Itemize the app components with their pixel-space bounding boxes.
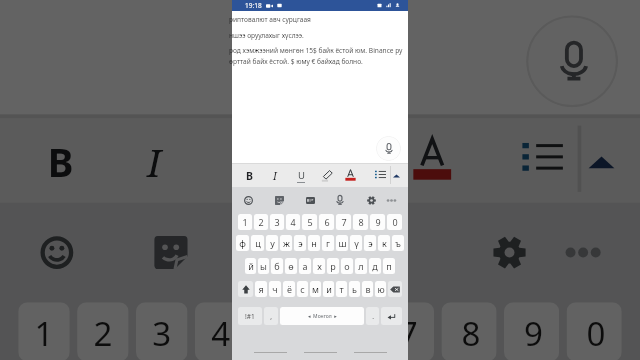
- staticText: B: [48, 137, 73, 188]
- button[interactable]: Stickers: [270, 189, 288, 211]
- button[interactable]: с: [297, 281, 308, 297]
- button[interactable]: 7: [336, 214, 351, 230]
- button[interactable]: г: [322, 235, 334, 251]
- button[interactable]: Emoji: [239, 189, 257, 211]
- button[interactable]: 1: [238, 214, 252, 230]
- button[interactable]: Text colour: [394, 118, 471, 203]
- button[interactable]: 5: [302, 214, 317, 230]
- button[interactable]: Navigation: [303, 348, 337, 356]
- button[interactable]: п: [383, 258, 395, 274]
- button[interactable]: GIF: [301, 189, 319, 211]
- button[interactable]: 9: [370, 214, 385, 230]
- button[interactable]: ё: [283, 281, 295, 297]
- button[interactable]: н: [308, 235, 320, 251]
- button[interactable]: Bulleted list: [370, 163, 391, 186]
- button[interactable]: Voice typing: [331, 189, 349, 211]
- button[interactable]: ч: [269, 281, 281, 297]
- button[interactable]: я: [255, 281, 267, 297]
- staticText: ф: [239, 237, 246, 249]
- button[interactable]: д: [369, 258, 381, 274]
- button[interactable]: 0: [387, 214, 402, 230]
- button[interactable]: Highlight: [316, 164, 337, 187]
- button[interactable]: ө: [285, 258, 297, 274]
- button[interactable]: GIF: [250, 210, 316, 291]
- button[interactable]: Stickers: [136, 210, 202, 291]
- button[interactable]: 3: [136, 302, 187, 360]
- button[interactable]: л: [355, 258, 367, 274]
- button[interactable]: !#1: [238, 307, 262, 325]
- button[interactable]: 8: [353, 214, 368, 230]
- button[interactable]: Shift: [238, 281, 253, 297]
- button[interactable]: 4: [286, 214, 300, 230]
- button[interactable]: 7: [379, 302, 434, 360]
- button[interactable]: Underline: [210, 118, 287, 203]
- button[interactable]: ж: [280, 235, 292, 251]
- button[interactable]: х: [313, 258, 325, 274]
- button[interactable]: и: [323, 281, 334, 297]
- button[interactable]: Navigation: [353, 348, 387, 356]
- button[interactable]: т: [336, 281, 347, 297]
- button[interactable]: э: [294, 235, 306, 251]
- button[interactable]: Bold: [22, 118, 99, 203]
- staticText: у: [270, 237, 275, 249]
- button[interactable]: 2: [254, 214, 268, 230]
- staticText: B: [246, 169, 253, 183]
- button[interactable]: .: [366, 307, 379, 325]
- button[interactable]: 6: [319, 214, 334, 230]
- button[interactable]: 6: [316, 302, 371, 360]
- button[interactable]: в: [362, 281, 373, 297]
- button[interactable]: 4: [195, 302, 246, 360]
- button[interactable]: Enter: [381, 307, 402, 325]
- button[interactable]: ъ: [392, 235, 404, 251]
- staticText: н: [311, 237, 317, 249]
- button[interactable]: у: [266, 235, 278, 251]
- button[interactable]: ф: [236, 235, 249, 251]
- button[interactable]: ◂ Монгол ▸: [280, 307, 364, 325]
- button[interactable]: э: [364, 235, 376, 251]
- button[interactable]: м: [310, 281, 321, 297]
- button[interactable]: 0: [567, 302, 622, 360]
- staticText: 5: [272, 310, 294, 354]
- button[interactable]: ь: [349, 281, 360, 297]
- button[interactable]: р: [327, 258, 339, 274]
- button[interactable]: Voice typing: [360, 210, 427, 291]
- button[interactable]: 1: [18, 302, 70, 360]
- button[interactable]: ы: [258, 258, 269, 274]
- button[interactable]: More options: [383, 189, 399, 211]
- button[interactable]: Voice input: [376, 136, 401, 161]
- button[interactable]: а: [299, 258, 311, 274]
- button[interactable]: Emoji: [22, 210, 88, 291]
- staticText: а: [302, 260, 308, 272]
- button[interactable]: Bulleted list: [504, 114, 581, 199]
- button[interactable]: б: [271, 258, 283, 274]
- button[interactable]: ш: [336, 235, 348, 251]
- button[interactable]: Collapse toolbar: [574, 118, 625, 203]
- button[interactable]: Voice input: [526, 15, 618, 107]
- staticText: ншээ оруулахыг хүслээ.: [229, 31, 304, 40]
- button[interactable]: й: [245, 258, 256, 274]
- button[interactable]: Backspace: [388, 281, 402, 297]
- button[interactable]: 3: [270, 214, 284, 230]
- button[interactable]: 2: [77, 302, 129, 360]
- button[interactable]: Underline: [290, 164, 311, 187]
- button[interactable]: ц: [251, 235, 264, 251]
- button[interactable]: 5: [254, 302, 309, 360]
- button[interactable]: о: [341, 258, 353, 274]
- button[interactable]: Settings: [362, 189, 380, 211]
- button[interactable]: ю: [375, 281, 386, 297]
- button[interactable]: ,: [264, 307, 278, 325]
- button[interactable]: Collapse toolbar: [389, 164, 403, 187]
- button[interactable]: Highlight: [305, 118, 383, 203]
- button[interactable]: Settings: [475, 210, 541, 291]
- button[interactable]: к: [378, 235, 390, 251]
- button[interactable]: 8: [441, 302, 497, 360]
- button[interactable]: More options: [552, 210, 611, 291]
- button[interactable]: Text colour: [340, 164, 361, 187]
- button[interactable]: 9: [504, 302, 559, 360]
- button[interactable]: Italic: [264, 164, 285, 187]
- staticText: о: [344, 260, 350, 272]
- button[interactable]: Italic: [114, 118, 191, 203]
- button[interactable]: ү: [350, 235, 362, 251]
- button[interactable]: Bold: [239, 164, 260, 187]
- button[interactable]: Navigation: [253, 348, 287, 356]
